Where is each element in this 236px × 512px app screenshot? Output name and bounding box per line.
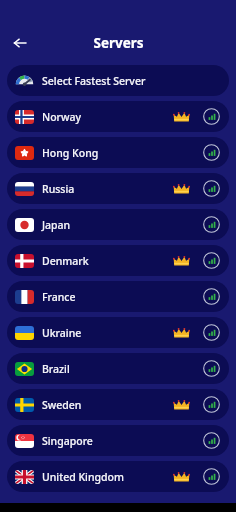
staticText: Ukraine [42,326,82,340]
staticText: Select Fastest Server [42,74,146,88]
staticText: Russia [42,182,75,196]
button[interactable]: United Kingdom [7,461,229,492]
button[interactable]: Ukraine [7,317,229,348]
staticText: Hong Kong [42,146,99,160]
button[interactable]: Singapore [7,425,229,456]
button[interactable]: Brazil [7,353,229,384]
button[interactable]: Select Fastest Server [7,65,229,96]
button[interactable]: Sweden [7,389,229,420]
staticText: Denmark [42,254,89,268]
staticText: Norway [42,110,82,124]
staticText: Sweden [42,398,82,412]
staticText: Servers [93,34,144,52]
button[interactable]: Denmark [7,245,229,276]
staticText: Japan [42,218,71,232]
staticText: France [42,290,76,304]
button[interactable]: Hong Kong [7,137,229,168]
button[interactable]: Russia [7,173,229,204]
button[interactable]: Back [5,28,35,58]
staticText: Brazil [42,362,70,376]
button[interactable]: France [7,281,229,312]
button[interactable]: Norway [7,101,229,132]
staticText: United Kingdom [42,470,124,484]
button[interactable]: Japan [7,209,229,240]
staticText: Singapore [42,434,93,448]
